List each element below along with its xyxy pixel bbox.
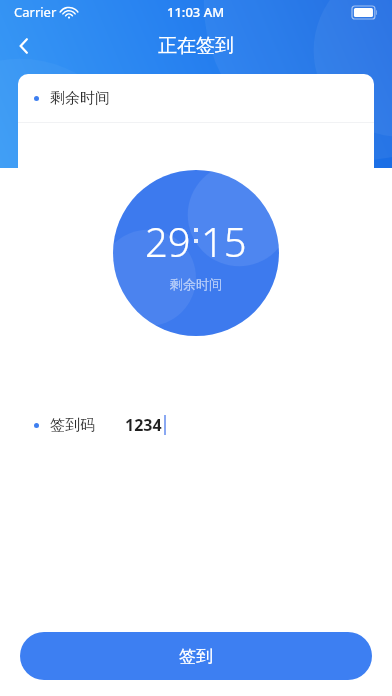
button[interactable]: 签到 bbox=[20, 632, 372, 680]
staticText: 签到 bbox=[179, 646, 213, 667]
staticText: 剩余时间 bbox=[170, 276, 222, 292]
staticText: 11:03 AM bbox=[167, 3, 225, 21]
staticText: 15 bbox=[201, 214, 247, 268]
staticText: 正在签到 bbox=[158, 34, 234, 58]
staticText: 剩余时间 bbox=[50, 89, 110, 108]
staticText: 1234 bbox=[125, 414, 162, 436]
staticText: Carrier bbox=[14, 3, 57, 21]
staticText: 签到码 bbox=[50, 416, 95, 435]
button[interactable]: Back bbox=[0, 22, 48, 70]
button[interactable]: 签到码 bbox=[18, 400, 374, 450]
staticText: 29 bbox=[145, 214, 191, 268]
